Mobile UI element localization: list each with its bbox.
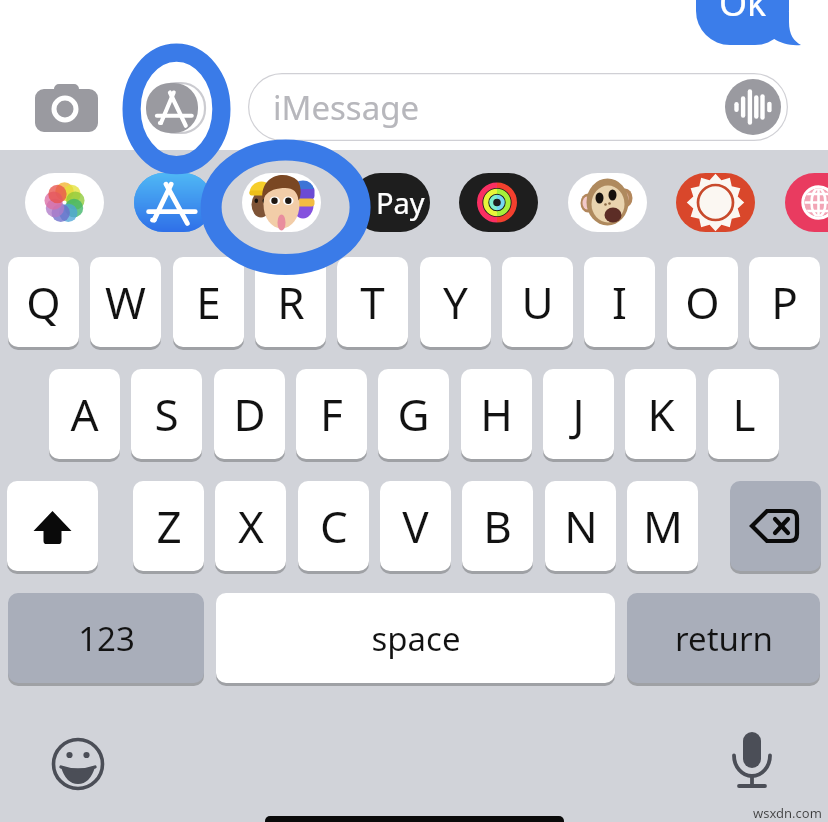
button[interactable]: Apple Pay: [351, 173, 430, 232]
staticText: K: [647, 384, 675, 444]
button[interactable]: S: [131, 369, 202, 459]
button[interactable]: return: [627, 593, 820, 683]
staticText: V: [402, 496, 429, 556]
staticText: J: [572, 384, 585, 444]
staticText: G: [397, 384, 430, 444]
button[interactable]: T: [337, 257, 408, 347]
button[interactable]: J: [543, 369, 614, 459]
staticText: S: [154, 384, 179, 444]
staticText: O: [685, 272, 720, 332]
button[interactable]: Y: [420, 257, 491, 347]
button[interactable]: R: [255, 257, 326, 347]
button[interactable]: App Store: [146, 83, 205, 133]
staticText: H: [480, 384, 513, 444]
button[interactable]: Dictation: [730, 730, 776, 790]
staticText: P: [771, 272, 798, 332]
button[interactable]: Sun: [676, 173, 755, 232]
button[interactable]: I: [584, 257, 655, 347]
button[interactable]: L: [708, 369, 779, 459]
button[interactable]: Camera: [35, 84, 98, 132]
button[interactable]: Animoji: [568, 173, 647, 232]
staticText: W: [105, 272, 146, 332]
button[interactable]: H: [461, 369, 532, 459]
button[interactable]: V: [380, 481, 451, 571]
button[interactable]: Audio message: [725, 79, 781, 135]
button[interactable]: C: [298, 481, 369, 571]
staticText: F: [320, 384, 343, 444]
staticText: I: [612, 272, 627, 332]
button[interactable]: P: [749, 257, 820, 347]
button[interactable]: Fitness: [459, 173, 538, 232]
staticText: Y: [443, 272, 468, 332]
button[interactable]: K: [625, 369, 696, 459]
button[interactable]: O: [667, 257, 738, 347]
button[interactable]: App Store: [134, 173, 213, 232]
button[interactable]: M: [627, 481, 698, 571]
staticText: wsxdn.com: [753, 804, 822, 822]
staticText: X: [238, 496, 264, 556]
staticText: E: [196, 272, 221, 332]
staticText: T: [360, 272, 385, 332]
staticText: iMessage: [273, 85, 420, 130]
button[interactable]: X: [215, 481, 286, 571]
button[interactable]: Backspace: [730, 481, 821, 571]
staticText: Pay: [376, 183, 425, 222]
button[interactable]: iMessage: [248, 73, 788, 141]
staticText: Ok: [719, 0, 767, 27]
button[interactable]: Q: [8, 257, 79, 347]
button[interactable]: A: [49, 369, 120, 459]
button[interactable]: Z: [133, 481, 204, 571]
staticText: M: [643, 496, 683, 556]
staticText: N: [564, 496, 598, 556]
staticText: return: [675, 616, 773, 661]
button[interactable]: N: [545, 481, 616, 571]
button[interactable]: Globe: [785, 173, 828, 232]
button[interactable]: E: [173, 257, 244, 347]
button[interactable]: D: [214, 369, 285, 459]
button[interactable]: Emoji: [50, 736, 106, 792]
staticText: B: [483, 496, 512, 556]
button[interactable]: 123: [8, 593, 204, 683]
staticText: Z: [156, 496, 182, 556]
button[interactable]: G: [378, 369, 449, 459]
staticText: U: [521, 272, 554, 332]
button[interactable]: W: [90, 257, 161, 347]
staticText: 123: [78, 616, 135, 661]
button[interactable]: Photos: [25, 173, 104, 232]
button[interactable]: F: [296, 369, 367, 459]
staticText: Q: [26, 272, 61, 332]
button[interactable]: U: [502, 257, 573, 347]
button[interactable]: space: [216, 593, 615, 683]
staticText: space: [371, 616, 461, 661]
button[interactable]: Shift: [7, 481, 98, 571]
staticText: D: [233, 384, 266, 444]
staticText: A: [70, 384, 99, 444]
staticText: L: [732, 384, 756, 444]
staticText: R: [277, 272, 305, 332]
button[interactable]: B: [462, 481, 533, 571]
staticText: C: [320, 496, 348, 556]
button[interactable]: Memoji: [242, 173, 321, 232]
